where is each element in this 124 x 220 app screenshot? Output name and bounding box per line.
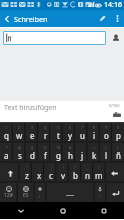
button[interactable]: ": [20, 162, 33, 182]
button[interactable]: Add recipient: [108, 30, 124, 45]
staticText: @: [18, 145, 22, 150]
staticText: x: [37, 170, 42, 181]
staticText: m: [95, 170, 103, 181]
button[interactable]: /: [93, 162, 105, 182]
staticText: u: [80, 130, 85, 141]
button[interactable]: Backspace: [105, 162, 124, 182]
staticText: 3: [31, 125, 34, 130]
button[interactable]: 6: [64, 122, 76, 142]
staticText: %: [57, 145, 60, 150]
button[interactable]: Period: [94, 182, 106, 202]
staticText: k: [92, 150, 97, 161]
button[interactable]: @: [13, 142, 26, 162]
staticText: *: [6, 145, 8, 150]
staticText: p: [116, 130, 121, 141]
button[interactable]: Symbols: [0, 182, 17, 202]
button[interactable]: 0: [112, 122, 124, 142]
button[interactable]: ;: [45, 162, 57, 182]
button[interactable]: 9: [100, 122, 112, 142]
button[interactable]: -: [76, 142, 88, 162]
staticText: ): [117, 145, 119, 150]
staticText: +: [93, 145, 96, 150]
staticText: 14:16: [104, 0, 122, 10]
staticText: 12#: [4, 192, 13, 199]
staticText: f: [44, 150, 47, 161]
button[interactable]: *: [0, 142, 13, 162]
button[interactable]: Language: [17, 182, 34, 202]
button[interactable]: 2: [13, 122, 26, 142]
staticText: &: [69, 145, 72, 150]
staticText: .: [99, 192, 101, 199]
button[interactable]: Recents: [83, 202, 124, 219]
button[interactable]: Edit: [94, 10, 110, 27]
staticText: l: [105, 150, 108, 161]
staticText: /: [98, 165, 100, 170]
staticText: i: [93, 130, 96, 141]
button[interactable]: _: [81, 162, 93, 182]
button[interactable]: $: [39, 142, 52, 162]
staticText: s: [18, 150, 22, 161]
staticText: _: [86, 165, 88, 170]
button[interactable]: !: [57, 162, 69, 182]
button[interactable]: 8: [88, 122, 100, 142]
staticText: z: [25, 170, 29, 181]
staticText: g: [56, 150, 61, 161]
staticText: h: [68, 150, 73, 161]
button[interactable]: 4: [39, 122, 52, 142]
staticText: e: [30, 130, 35, 141]
staticText: 5: [57, 125, 60, 130]
button[interactable]: Comma: [34, 182, 46, 202]
staticText: 1: [5, 125, 8, 130]
staticText: #: [31, 145, 34, 150]
button[interactable]: Home: [42, 202, 83, 219]
button[interactable]: ?: [69, 162, 81, 182]
button[interactable]: ): [112, 142, 124, 162]
button[interactable]: 3: [26, 122, 39, 142]
button[interactable]: More options: [110, 10, 124, 27]
staticText: (: [105, 145, 107, 150]
staticText: y: [68, 130, 73, 141]
button[interactable]: Enter: [106, 182, 124, 202]
button[interactable]: (: [100, 142, 112, 162]
staticText: 0/160: [109, 103, 120, 108]
staticText: ?: [74, 165, 76, 170]
button[interactable]: :: [33, 162, 45, 182]
staticText: a: [4, 150, 9, 161]
staticText: :: [39, 165, 40, 170]
staticText: 7: [81, 125, 84, 130]
button[interactable]: &: [64, 142, 76, 162]
staticText: v: [61, 170, 66, 181]
staticText: Schreiben: [14, 14, 48, 24]
staticText: d: [30, 150, 35, 161]
button[interactable]: 1: [0, 122, 13, 142]
button[interactable]: Attach: [110, 108, 124, 122]
button[interactable]: 5: [52, 122, 64, 142]
button[interactable]: 7: [76, 122, 88, 142]
button[interactable]: Space: [46, 182, 94, 202]
button[interactable]: +: [88, 142, 100, 162]
staticText: w: [16, 130, 23, 141]
staticText: o: [104, 130, 109, 141]
button[interactable]: Back: [0, 202, 42, 219]
staticText: r: [44, 130, 48, 141]
button[interactable]: #: [26, 142, 39, 162]
staticText: ,: [39, 192, 41, 199]
staticText: t: [57, 130, 60, 141]
staticText: ñ: [116, 150, 121, 161]
staticText: 9: [105, 125, 108, 130]
staticText: 6: [69, 125, 72, 130]
button[interactable]: Shift: [0, 162, 20, 182]
staticText: q: [4, 130, 9, 141]
staticText: Text hinzufügen: [4, 103, 57, 113]
button[interactable]: Back: [0, 10, 14, 27]
staticText: j: [81, 150, 84, 161]
staticText: n: [85, 170, 90, 181]
staticText: ;: [51, 165, 52, 170]
staticText: 8: [93, 125, 96, 130]
staticText: $: [44, 145, 47, 150]
staticText: 4: [44, 125, 47, 130]
staticText: !: [63, 165, 64, 170]
staticText: 2: [18, 125, 21, 130]
button[interactable]: %: [52, 142, 64, 162]
button[interactable]: [3, 31, 106, 45]
